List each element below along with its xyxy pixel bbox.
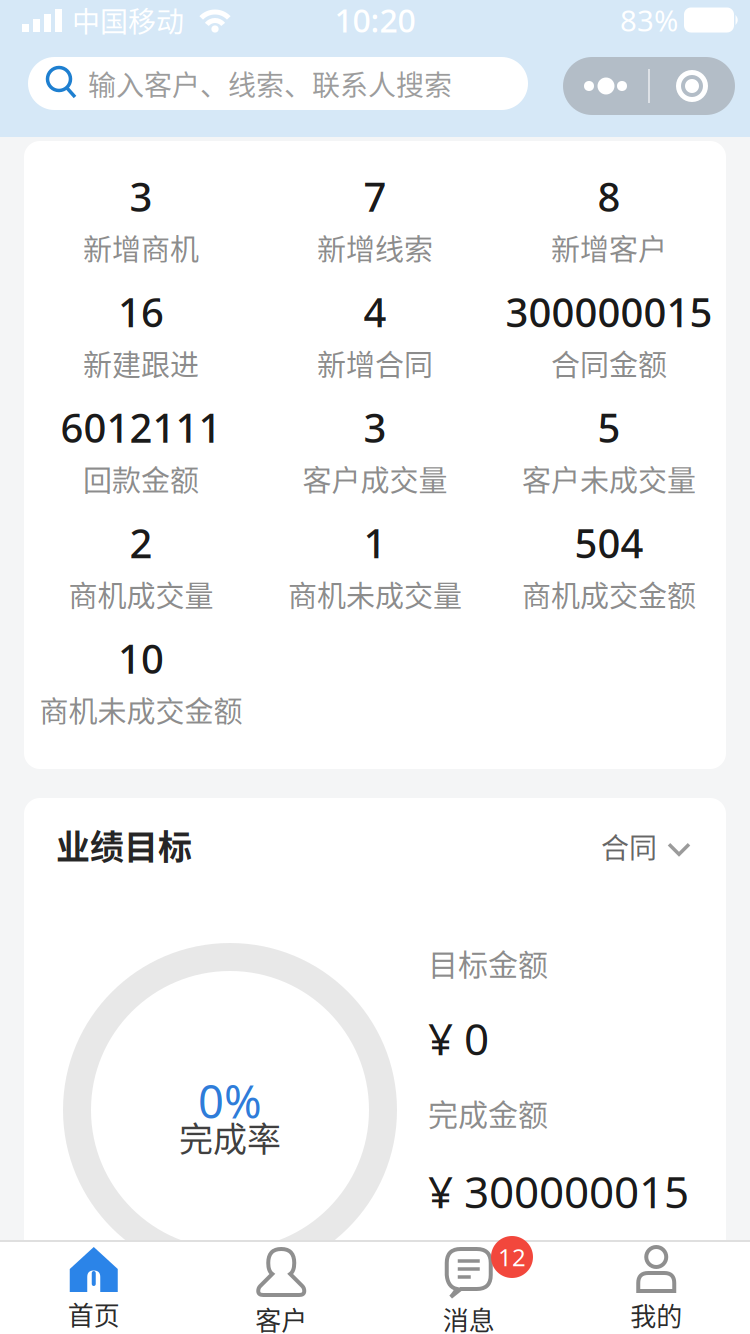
staticText: 客户 <box>255 1300 307 1334</box>
staticText: ¥ 0 <box>428 1009 489 1067</box>
staticText: 商机未成交量 <box>288 573 462 615</box>
staticText: 8 <box>597 170 620 223</box>
staticText: 6012111 <box>60 401 221 454</box>
staticText: 我的 <box>630 1296 682 1334</box>
staticText: 4 <box>363 285 386 338</box>
staticText: 3 <box>129 170 152 223</box>
staticText: 83% <box>620 0 678 39</box>
staticText: 新增线索 <box>317 227 433 269</box>
staticText: 新增客户 <box>551 227 667 269</box>
staticText: 12 <box>498 1241 526 1273</box>
staticText: 10:20 <box>334 0 415 41</box>
staticText: 1 <box>363 516 386 569</box>
staticText: 5 <box>597 401 620 454</box>
staticText: 业绩目标 <box>56 820 192 869</box>
staticText: 合同 <box>601 826 657 866</box>
staticText: 中国移动 <box>72 0 184 40</box>
staticText: 3 <box>363 401 386 454</box>
staticText: 完成金额 <box>428 1091 548 1134</box>
staticText: 商机成交金额 <box>522 573 696 615</box>
staticText: 客户未成交量 <box>522 458 696 500</box>
staticText: 商机未成交金额 <box>39 689 242 731</box>
staticText: 10 <box>118 632 164 685</box>
button[interactable]: 消息 <box>375 1242 562 1334</box>
button[interactable]: 合同 <box>601 826 691 866</box>
staticText: 完成率 <box>179 1112 281 1162</box>
staticText: 输入客户、线索、联系人搜索 <box>88 63 452 104</box>
button[interactable]: 客户 <box>187 1242 375 1334</box>
staticText: 消息 <box>443 1300 495 1334</box>
staticText: 新增商机 <box>83 227 199 269</box>
staticText: 商机成交量 <box>68 573 213 615</box>
staticText: 目标金额 <box>428 941 548 984</box>
staticText: 504 <box>574 516 643 569</box>
staticText: 合同金额 <box>551 342 667 384</box>
staticText: 7 <box>363 170 386 223</box>
staticText: 新增合同 <box>317 342 433 384</box>
staticText: 新建跟进 <box>83 342 199 384</box>
staticText: 首页 <box>68 1295 120 1333</box>
staticText: 客户成交量 <box>302 458 447 500</box>
staticText: 0% <box>198 1071 262 1131</box>
staticText: 300000015 <box>505 285 712 338</box>
button[interactable]: 首页 <box>0 1242 187 1334</box>
staticText: 2 <box>129 516 152 569</box>
staticText: ¥ 300000015 <box>428 1162 689 1220</box>
button[interactable]: 小程序菜单 <box>563 57 735 115</box>
button[interactable]: 输入客户、线索、联系人搜索 <box>28 57 528 110</box>
staticText: 16 <box>118 285 164 338</box>
button[interactable]: 我的 <box>562 1242 750 1334</box>
staticText: 回款金额 <box>83 458 199 500</box>
